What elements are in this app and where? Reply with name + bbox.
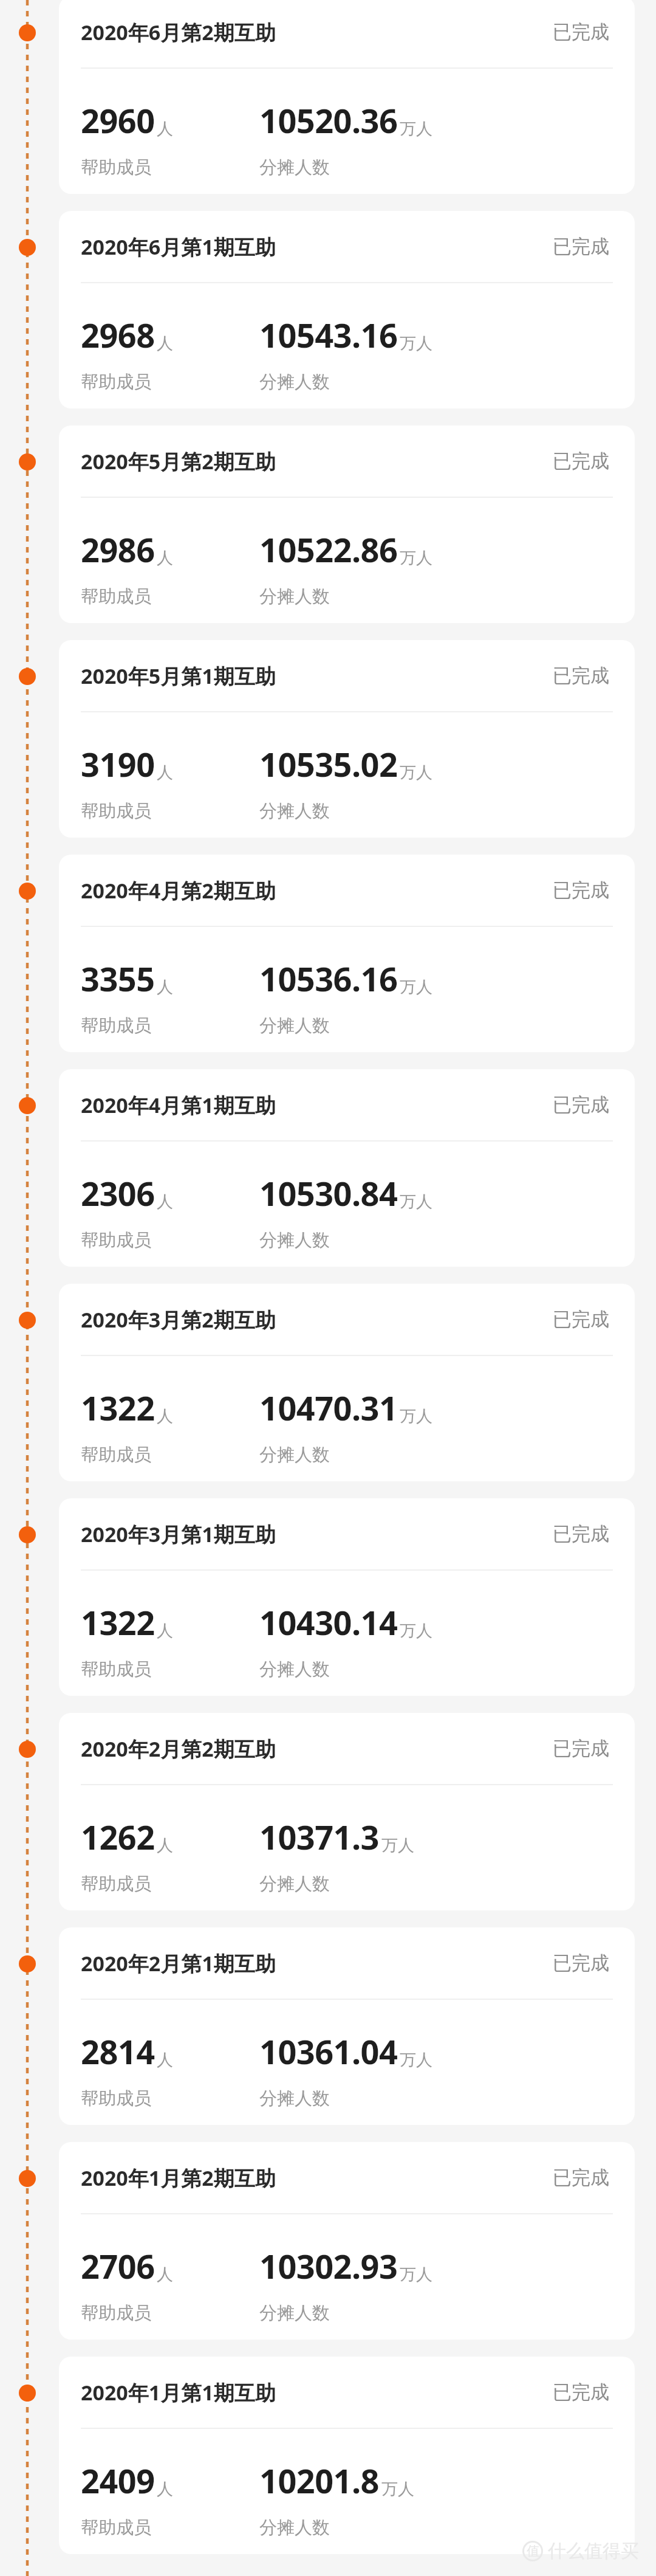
staticText: 分摊人数 xyxy=(259,1658,330,1681)
staticText: 2020年5月第1期互助 xyxy=(81,662,276,690)
staticText: 分摊人数 xyxy=(259,1444,330,1466)
staticText: 分摊人数 xyxy=(259,371,330,393)
staticText: 已完成 xyxy=(553,235,609,258)
staticText: 人 xyxy=(157,762,173,783)
button[interactable]: 2020年2月第2期互助 xyxy=(59,1713,635,1910)
staticText: 2020年1月第1期互助 xyxy=(81,2378,276,2406)
staticText: 值 xyxy=(527,2543,539,2559)
staticText: 人 xyxy=(157,548,173,568)
staticText: 10535.02 xyxy=(259,742,398,787)
staticText: 2986 xyxy=(81,527,155,572)
staticText: 帮助成员 xyxy=(81,1014,151,1037)
staticText: 1322 xyxy=(81,1600,155,1645)
staticText: 万人 xyxy=(400,548,432,568)
staticText: 10522.86 xyxy=(259,527,398,572)
staticText: 分摊人数 xyxy=(259,800,330,822)
staticText: 分摊人数 xyxy=(259,156,330,179)
staticText: 2020年4月第1期互助 xyxy=(81,1091,276,1119)
staticText: 10201.8 xyxy=(259,2458,380,2503)
staticText: 人 xyxy=(157,2264,173,2285)
staticText: 2020年3月第1期互助 xyxy=(81,1520,276,1548)
staticText: 分摊人数 xyxy=(259,1014,330,1037)
staticText: 分摊人数 xyxy=(259,1873,330,1895)
button[interactable]: 2020年1月第2期互助 xyxy=(59,2142,635,2340)
staticText: 2960 xyxy=(81,98,155,143)
button[interactable]: 2020年3月第1期互助 xyxy=(59,1498,635,1696)
staticText: 帮助成员 xyxy=(81,2087,151,2110)
staticText: 人 xyxy=(157,1191,173,1212)
button[interactable]: 2020年3月第2期互助 xyxy=(59,1284,635,1481)
staticText: 已完成 xyxy=(553,449,609,473)
staticText: 2020年4月第2期互助 xyxy=(81,876,276,904)
staticText: 万人 xyxy=(400,1620,432,1641)
staticText: 万人 xyxy=(400,119,432,139)
staticText: 已完成 xyxy=(553,20,609,44)
staticText: 已完成 xyxy=(553,664,609,687)
staticText: 分摊人数 xyxy=(259,2087,330,2110)
staticText: 帮助成员 xyxy=(81,1444,151,1466)
staticText: 10430.14 xyxy=(259,1600,398,1645)
staticText: 10536.16 xyxy=(259,956,398,1001)
staticText: 人 xyxy=(157,333,173,354)
button[interactable]: 2020年1月第1期互助 xyxy=(59,2357,635,2554)
staticText: 万人 xyxy=(400,2264,432,2285)
staticText: 人 xyxy=(157,977,173,997)
button[interactable]: 2020年6月第1期互助 xyxy=(59,211,635,408)
button[interactable]: 2020年2月第1期互助 xyxy=(59,1927,635,2125)
staticText: 万人 xyxy=(381,1835,414,1856)
staticText: 2706 xyxy=(81,2244,155,2288)
staticText: 帮助成员 xyxy=(81,371,151,393)
staticText: 帮助成员 xyxy=(81,800,151,822)
staticText: 万人 xyxy=(400,2050,432,2070)
button[interactable]: 2020年5月第1期互助 xyxy=(59,640,635,838)
staticText: 1322 xyxy=(81,1385,155,1430)
staticText: 帮助成员 xyxy=(81,2302,151,2324)
staticText: 分摊人数 xyxy=(259,1229,330,1252)
staticText: 分摊人数 xyxy=(259,2516,330,2539)
staticText: 2020年2月第2期互助 xyxy=(81,1735,276,1763)
staticText: 已完成 xyxy=(553,2380,609,2404)
staticText: 已完成 xyxy=(553,1737,609,1760)
staticText: 已完成 xyxy=(553,878,609,902)
staticText: 2020年1月第2期互助 xyxy=(81,2164,276,2192)
staticText: 10361.04 xyxy=(259,2029,398,2074)
staticText: 万人 xyxy=(400,1191,432,1212)
staticText: 帮助成员 xyxy=(81,2516,151,2539)
staticText: 万人 xyxy=(400,1406,432,1427)
button[interactable]: 2020年6月第2期互助 xyxy=(59,0,635,194)
staticText: 已完成 xyxy=(553,1307,609,1331)
staticText: 2306 xyxy=(81,1171,155,1216)
staticText: 人 xyxy=(157,1620,173,1641)
staticText: 万人 xyxy=(400,762,432,783)
staticText: 2409 xyxy=(81,2458,155,2503)
staticText: 3355 xyxy=(81,956,155,1001)
staticText: 10470.31 xyxy=(259,1385,398,1430)
staticText: 已完成 xyxy=(553,1093,609,1117)
staticText: 万人 xyxy=(400,333,432,354)
staticText: 人 xyxy=(157,2050,173,2070)
staticText: 10371.3 xyxy=(259,1814,380,1859)
staticText: 帮助成员 xyxy=(81,156,151,179)
staticText: 人 xyxy=(157,119,173,139)
staticText: 帮助成员 xyxy=(81,585,151,608)
staticText: 人 xyxy=(157,2479,173,2499)
button[interactable]: 2020年4月第2期互助 xyxy=(59,855,635,1052)
button[interactable]: 2020年5月第2期互助 xyxy=(59,425,635,623)
staticText: 10520.36 xyxy=(259,98,398,143)
button[interactable]: 2020年4月第1期互助 xyxy=(59,1069,635,1267)
staticText: 10530.84 xyxy=(259,1171,398,1216)
staticText: 帮助成员 xyxy=(81,1873,151,1895)
staticText: 2020年2月第1期互助 xyxy=(81,1949,276,1977)
staticText: 人 xyxy=(157,1406,173,1427)
staticText: 人 xyxy=(157,1835,173,1856)
staticText: 3190 xyxy=(81,742,155,787)
staticText: 帮助成员 xyxy=(81,1229,151,1252)
staticText: 2020年3月第2期互助 xyxy=(81,1306,276,1334)
staticText: 2020年6月第1期互助 xyxy=(81,233,276,261)
staticText: 分摊人数 xyxy=(259,2302,330,2324)
staticText: 分摊人数 xyxy=(259,585,330,608)
staticText: 2020年5月第2期互助 xyxy=(81,447,276,475)
staticText: 2020年6月第2期互助 xyxy=(81,18,276,46)
staticText: 已完成 xyxy=(553,1951,609,1975)
staticText: 万人 xyxy=(400,977,432,997)
